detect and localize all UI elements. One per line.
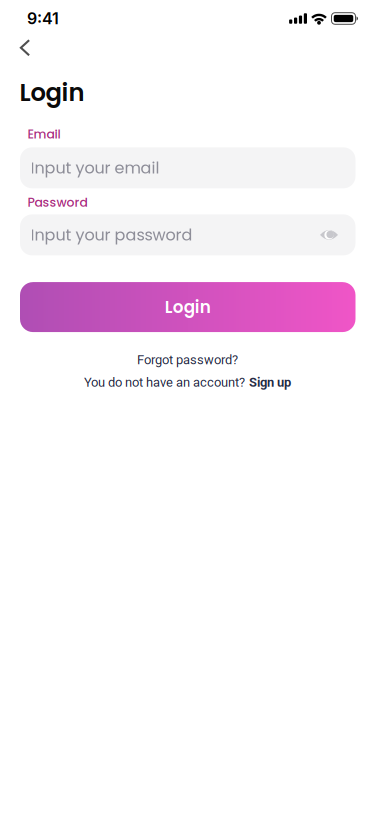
button[interactable]: Login	[0, 282, 375, 332]
staticText: Email	[27, 125, 60, 143]
staticText: Login	[19, 75, 84, 109]
button[interactable]: Forgot password?	[0, 352, 375, 367]
staticText: Forgot password?	[137, 352, 238, 367]
staticText: Password	[27, 194, 87, 211]
staticText: Input your password	[30, 224, 192, 246]
button[interactable]: Input your password	[0, 214, 375, 255]
staticText: Login	[165, 295, 211, 319]
staticText: Sign up	[249, 375, 291, 390]
button[interactable]: Show password	[320, 229, 338, 241]
button[interactable]: Sign up	[0, 375, 375, 390]
staticText: You do not have an account?	[84, 375, 245, 390]
staticText: 9:41	[27, 9, 59, 28]
button[interactable]: Input your email	[0, 147, 375, 188]
button[interactable]: Back	[0, 35, 54, 60]
staticText: Input your email	[30, 157, 159, 179]
